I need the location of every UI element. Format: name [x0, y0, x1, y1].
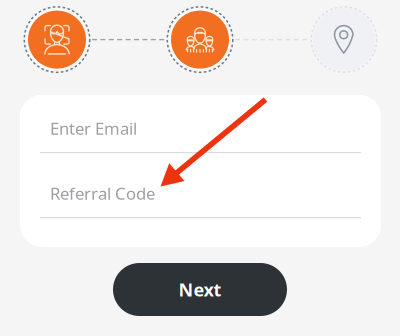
button[interactable]: Referral Code — [20, 160, 381, 222]
staticText: Enter Email — [50, 117, 137, 140]
button[interactable]: Next — [113, 263, 287, 316]
staticText: Next — [178, 277, 221, 302]
button[interactable]: Enter Email — [20, 95, 381, 157]
staticText: Referral Code — [50, 182, 155, 205]
